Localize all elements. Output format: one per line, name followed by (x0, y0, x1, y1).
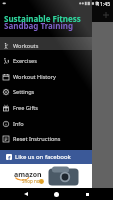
staticText: Free Gifts (13, 104, 39, 112)
staticText: Settings (13, 88, 35, 96)
button[interactable]: Home (49, 188, 64, 200)
button[interactable]: Workout History (0, 69, 92, 85)
button[interactable]: Info (0, 116, 92, 132)
staticText: 11:45 (97, 0, 111, 7)
staticText: f (8, 154, 11, 160)
staticText: Reset Instructions (13, 135, 61, 143)
staticText: Shop now (22, 178, 43, 184)
button[interactable]: Free Gifts (0, 100, 92, 116)
staticText: Exercises (13, 57, 37, 65)
staticText: amazon (14, 170, 42, 180)
button[interactable]: Back (18, 188, 33, 200)
button[interactable]: Settings (0, 84, 92, 100)
button[interactable]: amazon (0, 164, 92, 188)
button[interactable]: Exercises (0, 53, 92, 69)
staticText: Sustainable Fitness (4, 13, 81, 24)
staticText: Sandbag Training (4, 20, 74, 31)
button[interactable]: Recent apps (80, 188, 95, 200)
staticText: Workouts (13, 42, 39, 50)
staticText: Like us on facebook (15, 153, 71, 161)
button[interactable]: f (0, 150, 92, 164)
button[interactable]: Reset Instructions (0, 131, 92, 147)
staticText: Workout History (13, 73, 56, 81)
staticText: Info (13, 120, 24, 128)
button[interactable]: Workouts (0, 38, 92, 54)
button[interactable]: Add (100, 9, 111, 20)
